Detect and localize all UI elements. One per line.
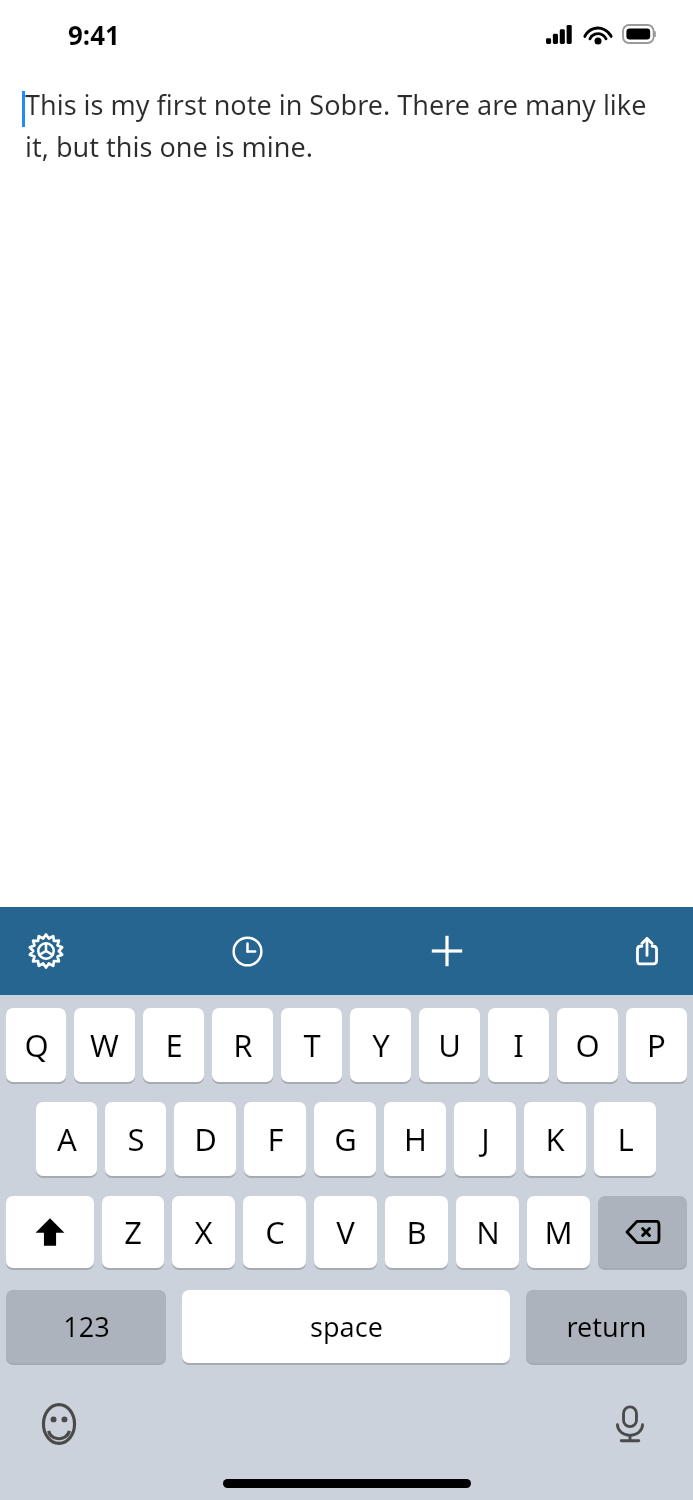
staticText: Z [124, 1211, 142, 1253]
button[interactable]: G [314, 1102, 376, 1176]
staticText: B [406, 1211, 427, 1253]
button[interactable]: 123 [6, 1290, 166, 1363]
staticText: M [544, 1211, 573, 1253]
button[interactable]: space [182, 1290, 510, 1363]
button[interactable]: Q [6, 1008, 66, 1082]
button[interactable]: M [527, 1196, 590, 1268]
button[interactable]: F [244, 1102, 306, 1176]
button[interactable]: B [385, 1196, 448, 1268]
button[interactable]: X [172, 1196, 235, 1268]
button[interactable]: P [626, 1008, 687, 1082]
staticText: A [57, 1118, 77, 1160]
button[interactable]: T [281, 1008, 342, 1082]
staticText: This is my first note in Sobre. There ar… [25, 86, 655, 165]
staticText: E [165, 1024, 183, 1066]
staticText: G [334, 1118, 357, 1160]
staticText: space [310, 1308, 383, 1345]
button[interactable]: Emoji [32, 1397, 86, 1451]
staticText: V [336, 1211, 355, 1253]
staticText: U [438, 1024, 461, 1066]
button[interactable]: New note [401, 907, 493, 995]
staticText: return [566, 1308, 647, 1345]
button[interactable]: E [143, 1008, 204, 1082]
staticText: D [194, 1118, 217, 1160]
button[interactable]: A [36, 1102, 97, 1176]
button[interactable]: Z [102, 1196, 164, 1268]
staticText: J [481, 1118, 490, 1160]
button[interactable]: R [212, 1008, 273, 1082]
button[interactable]: J [454, 1102, 516, 1176]
staticText: S [127, 1118, 145, 1160]
button[interactable]: Y [350, 1008, 411, 1082]
button[interactable]: This is my first note in Sobre. There ar… [0, 68, 693, 907]
staticText: Q [24, 1024, 49, 1066]
button[interactable]: I [488, 1008, 549, 1082]
button[interactable]: W [74, 1008, 135, 1082]
button[interactable]: return [526, 1290, 687, 1363]
staticText: P [647, 1024, 666, 1066]
staticText: R [233, 1024, 253, 1066]
button[interactable]: Shift [6, 1196, 94, 1268]
button[interactable]: U [419, 1008, 480, 1082]
staticText: F [267, 1118, 284, 1160]
button[interactable]: L [594, 1102, 656, 1176]
button[interactable]: C [243, 1196, 306, 1268]
staticText: 9:41 [68, 17, 120, 52]
button[interactable]: H [384, 1102, 446, 1176]
staticText: C [265, 1211, 285, 1253]
button[interactable]: K [524, 1102, 586, 1176]
button[interactable]: Share [601, 907, 693, 995]
button[interactable]: History [201, 907, 293, 995]
staticText: 123 [63, 1308, 110, 1345]
staticText: H [404, 1118, 427, 1160]
button[interactable]: Dictation [603, 1397, 657, 1451]
staticText: L [617, 1118, 634, 1160]
staticText: I [513, 1024, 524, 1066]
button[interactable]: Backspace [598, 1196, 687, 1268]
button[interactable]: O [557, 1008, 618, 1082]
button[interactable]: V [314, 1196, 377, 1268]
staticText: T [303, 1024, 321, 1066]
staticText: Y [372, 1024, 390, 1066]
button[interactable]: Settings [0, 907, 92, 995]
button[interactable]: S [105, 1102, 166, 1176]
staticText: X [194, 1211, 213, 1253]
staticText: O [575, 1024, 600, 1066]
staticText: K [545, 1118, 565, 1160]
staticText: N [476, 1211, 500, 1253]
button[interactable]: N [456, 1196, 519, 1268]
staticText: W [90, 1024, 119, 1066]
button[interactable]: D [174, 1102, 236, 1176]
